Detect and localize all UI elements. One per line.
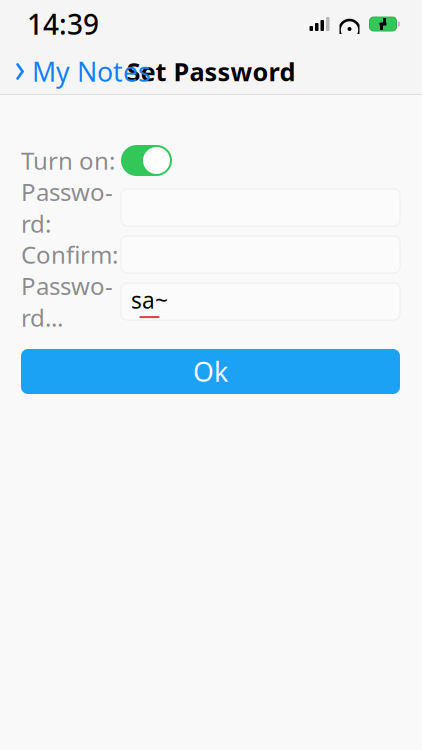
staticText: Password: (21, 176, 113, 239)
staticText: sa~ (131, 285, 168, 315)
button[interactable]: Password hint field (121, 283, 400, 320)
button[interactable]: My Notes (0, 46, 151, 97)
staticText: Turn on: (21, 145, 115, 176)
staticText: Ok (193, 354, 228, 389)
staticText: My Notes (32, 54, 151, 89)
staticText: Password... (21, 270, 113, 333)
staticText: Confirm: (21, 239, 118, 270)
button[interactable]: Turn on password (121, 145, 172, 176)
staticText: 14:39 (27, 5, 99, 43)
button[interactable]: Ok (21, 349, 400, 394)
staticText: Set Password (126, 55, 295, 88)
